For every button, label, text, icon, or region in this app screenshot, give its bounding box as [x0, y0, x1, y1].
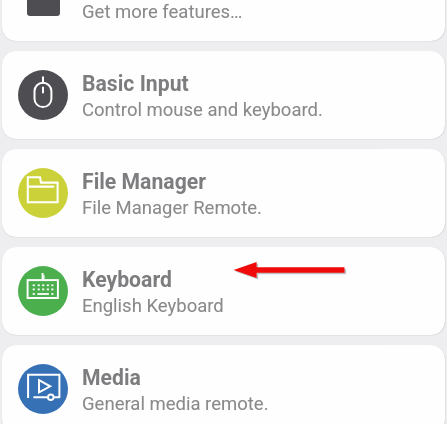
button[interactable]: Media: [2, 345, 445, 424]
staticText: File Manager: [82, 169, 206, 194]
button[interactable]: Keyboard: [2, 247, 445, 335]
staticText: Basic Input: [82, 71, 189, 96]
staticText: Control mouse and keyboard.: [82, 99, 323, 121]
staticText: English Keyboard: [82, 295, 224, 317]
button[interactable]: Premium: [2, 0, 445, 41]
staticText: Media: [82, 365, 141, 390]
staticText: File Manager Remote.: [82, 197, 262, 219]
button[interactable]: File Manager: [2, 149, 445, 237]
staticText: General media remote.: [82, 393, 269, 415]
button[interactable]: Basic Input: [2, 51, 445, 139]
staticText: Keyboard: [82, 267, 172, 292]
staticText: Get more features…: [82, 1, 243, 23]
